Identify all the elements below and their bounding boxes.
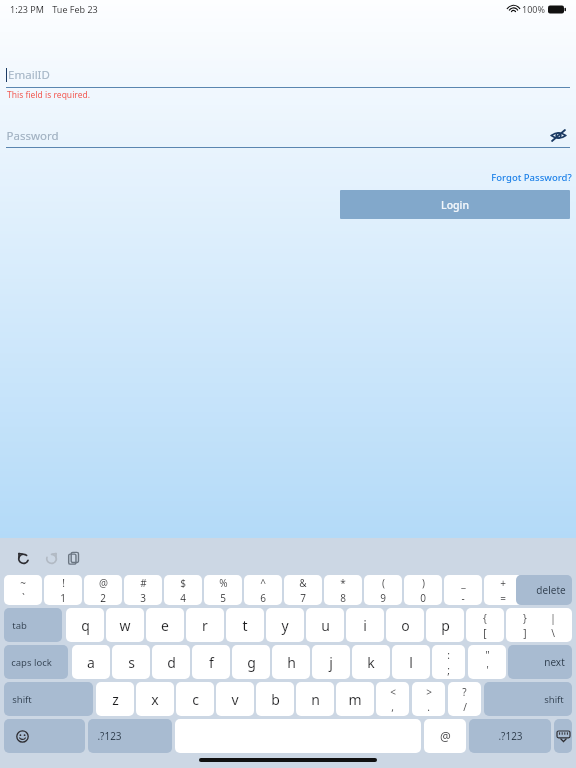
staticText: tab: [12, 619, 27, 632]
button[interactable]: l: [392, 645, 430, 679]
staticText: q: [81, 616, 90, 635]
button[interactable]: ": [468, 645, 506, 679]
staticText: /: [463, 700, 467, 714]
staticText: n: [311, 690, 320, 709]
button[interactable]: _: [444, 575, 482, 605]
button[interactable]: >: [412, 682, 445, 716]
staticText: ,: [391, 700, 394, 714]
button[interactable]: ^: [244, 575, 282, 605]
button[interactable]: t: [226, 608, 264, 642]
button[interactable]: g: [232, 645, 270, 679]
button[interactable]: caps lock: [4, 645, 68, 679]
staticText: Password: [6, 128, 59, 144]
button[interactable]: delete: [516, 575, 572, 605]
button[interactable]: !: [44, 575, 82, 605]
button[interactable]: next: [508, 645, 572, 679]
button[interactable]: shift: [484, 682, 572, 716]
button[interactable]: o: [386, 608, 424, 642]
staticText: d: [167, 653, 176, 672]
button[interactable]: *: [324, 575, 362, 605]
button[interactable]: b: [256, 682, 294, 716]
staticText: b: [271, 690, 280, 709]
button[interactable]: ~: [4, 575, 42, 605]
button[interactable]: <: [376, 682, 409, 716]
button[interactable]: .?123: [469, 719, 551, 753]
button[interactable]: }: [506, 608, 544, 642]
staticText: t: [242, 616, 248, 635]
button[interactable]: Show password: [546, 123, 570, 147]
staticText: [: [483, 626, 487, 640]
staticText: ?: [462, 685, 467, 699]
button[interactable]: +: [484, 575, 522, 605]
staticText: |: [550, 611, 556, 625]
button[interactable]: m: [336, 682, 374, 716]
staticText: Login: [441, 198, 469, 212]
staticText: a: [87, 653, 95, 672]
button[interactable]: w: [106, 608, 144, 642]
staticText: shift: [544, 693, 564, 706]
staticText: #: [140, 576, 147, 590]
staticText: 6: [260, 591, 266, 605]
button[interactable]: shift: [4, 682, 93, 716]
button[interactable]: r: [186, 608, 224, 642]
staticText: EmailID: [8, 67, 50, 83]
button[interactable]: Password: [6, 124, 536, 148]
button[interactable]: s: [112, 645, 150, 679]
button[interactable]: Login: [340, 190, 570, 219]
button[interactable]: v: [216, 682, 254, 716]
button[interactable]: c: [176, 682, 214, 716]
button[interactable]: k: [352, 645, 390, 679]
staticText: z: [112, 690, 119, 709]
button[interactable]: ?: [448, 682, 481, 716]
button[interactable]: {: [466, 608, 504, 642]
button[interactable]: Undo: [8, 546, 38, 570]
button[interactable]: f: [192, 645, 230, 679]
button[interactable]: ): [404, 575, 442, 605]
staticText: 4: [180, 591, 186, 605]
button[interactable]: e: [146, 608, 184, 642]
staticText: 8: [340, 591, 346, 605]
button[interactable]: tab: [4, 608, 62, 642]
staticText: \: [551, 626, 555, 640]
button[interactable]: z: [96, 682, 134, 716]
staticText: p: [441, 616, 450, 635]
staticText: ": [485, 648, 490, 662]
staticText: 7: [300, 591, 306, 605]
button[interactable]: Forgot Password?: [480, 168, 572, 186]
button[interactable]: &: [284, 575, 322, 605]
button[interactable]: i: [346, 608, 384, 642]
button[interactable]: y: [266, 608, 304, 642]
button[interactable]: x: [136, 682, 174, 716]
button[interactable]: Redo: [36, 546, 66, 570]
staticText: :: [447, 648, 450, 662]
button[interactable]: (: [364, 575, 402, 605]
button[interactable]: n: [296, 682, 334, 716]
button[interactable]: Paste: [60, 546, 88, 570]
button[interactable]: @: [84, 575, 122, 605]
button[interactable]: |: [534, 608, 572, 642]
button[interactable]: h: [272, 645, 310, 679]
staticText: ]: [523, 626, 527, 640]
button[interactable]: $: [164, 575, 202, 605]
staticText: u: [321, 616, 330, 635]
button[interactable]: :: [432, 645, 465, 679]
staticText: shift: [12, 693, 32, 706]
button[interactable]: #: [124, 575, 162, 605]
button[interactable]: u: [306, 608, 344, 642]
button[interactable]: .?123: [88, 719, 172, 753]
button[interactable]: a: [72, 645, 110, 679]
button[interactable]: p: [426, 608, 464, 642]
button[interactable]: Hide keyboard: [554, 719, 572, 753]
button[interactable]: EmailID: [6, 62, 570, 88]
staticText: o: [401, 616, 410, 635]
button[interactable]: d: [152, 645, 190, 679]
button[interactable]: q: [66, 608, 104, 642]
staticText: *: [340, 576, 346, 590]
staticText: v: [231, 690, 239, 709]
staticText: 100%: [522, 3, 545, 15]
button[interactable]: @: [424, 719, 466, 753]
button[interactable]: j: [312, 645, 350, 679]
button[interactable]: Emoji: [4, 719, 85, 753]
button[interactable]: %: [204, 575, 242, 605]
